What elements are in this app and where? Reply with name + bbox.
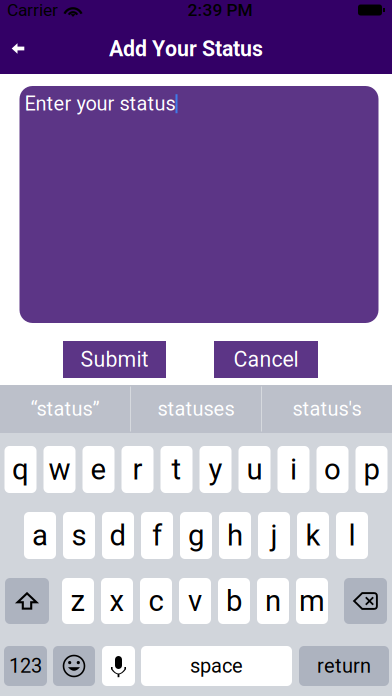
staticText: p: [363, 452, 379, 487]
button[interactable]: status's: [262, 385, 392, 433]
staticText: w: [48, 452, 70, 487]
button[interactable]: Cancel: [214, 341, 318, 378]
staticText: b: [226, 584, 242, 618]
button[interactable]: “status”: [0, 385, 130, 433]
button[interactable]: j: [258, 512, 290, 559]
button[interactable]: a: [24, 512, 56, 559]
button[interactable]: t: [160, 446, 192, 493]
button[interactable]: n: [257, 578, 289, 624]
staticText: z: [70, 584, 85, 618]
staticText: return: [317, 654, 371, 678]
button[interactable]: Dictate: [102, 646, 135, 686]
staticText: k: [305, 518, 320, 553]
staticText: u: [246, 452, 262, 487]
staticText: v: [188, 584, 202, 618]
staticText: i: [290, 452, 297, 487]
staticText: f: [152, 518, 162, 553]
button[interactable]: g: [180, 512, 212, 559]
button[interactable]: Back: [0, 30, 36, 67]
button[interactable]: l: [336, 512, 368, 559]
button[interactable]: q: [4, 446, 36, 493]
staticText: m: [299, 584, 325, 618]
button[interactable]: statuses: [131, 385, 261, 433]
staticText: n: [265, 584, 281, 618]
button[interactable]: Submit: [63, 341, 166, 378]
staticText: Carrier: [7, 0, 58, 20]
staticText: Enter your status: [24, 92, 175, 115]
staticText: q: [12, 452, 29, 487]
button[interactable]: c: [140, 578, 172, 624]
staticText: j: [270, 518, 277, 553]
staticText: statuses: [157, 397, 234, 421]
button[interactable]: r: [121, 446, 153, 493]
staticText: g: [188, 518, 204, 553]
button[interactable]: o: [316, 446, 348, 493]
staticText: Add Your Status: [109, 36, 263, 61]
button[interactable]: h: [219, 512, 251, 559]
button[interactable]: Shift: [5, 578, 49, 624]
staticText: o: [324, 452, 341, 487]
button[interactable]: e: [82, 446, 114, 493]
staticText: h: [227, 518, 243, 553]
button[interactable]: m: [296, 578, 328, 624]
button[interactable]: Emoji: [53, 646, 95, 686]
staticText: 2:39 PM: [187, 0, 252, 20]
button[interactable]: w: [43, 446, 75, 493]
button[interactable]: u: [238, 446, 270, 493]
staticText: e: [90, 452, 106, 487]
button[interactable]: return: [299, 646, 389, 686]
button[interactable]: space: [141, 646, 292, 686]
staticText: status's: [292, 397, 361, 421]
staticText: x: [109, 584, 124, 618]
staticText: Submit: [80, 347, 148, 372]
staticText: c: [148, 584, 163, 618]
staticText: y: [208, 452, 222, 487]
button[interactable]: 123: [4, 646, 47, 686]
button[interactable]: k: [297, 512, 329, 559]
staticText: s: [71, 518, 86, 553]
staticText: a: [32, 518, 48, 553]
button[interactable]: i: [277, 446, 309, 493]
button[interactable]: x: [101, 578, 133, 624]
button[interactable]: v: [179, 578, 211, 624]
staticText: t: [171, 452, 181, 487]
staticText: “status”: [30, 397, 99, 421]
button[interactable]: Delete: [344, 578, 387, 624]
button[interactable]: d: [102, 512, 134, 559]
button[interactable]: z: [62, 578, 94, 624]
staticText: d: [109, 518, 126, 553]
button[interactable]: b: [218, 578, 250, 624]
button[interactable]: s: [63, 512, 95, 559]
button[interactable]: f: [141, 512, 173, 559]
button[interactable]: y: [199, 446, 231, 493]
staticText: l: [348, 518, 355, 553]
button[interactable]: p: [355, 446, 387, 493]
staticText: space: [190, 654, 243, 678]
staticText: Cancel: [233, 347, 298, 372]
staticText: r: [132, 452, 142, 487]
staticText: 123: [9, 654, 42, 678]
